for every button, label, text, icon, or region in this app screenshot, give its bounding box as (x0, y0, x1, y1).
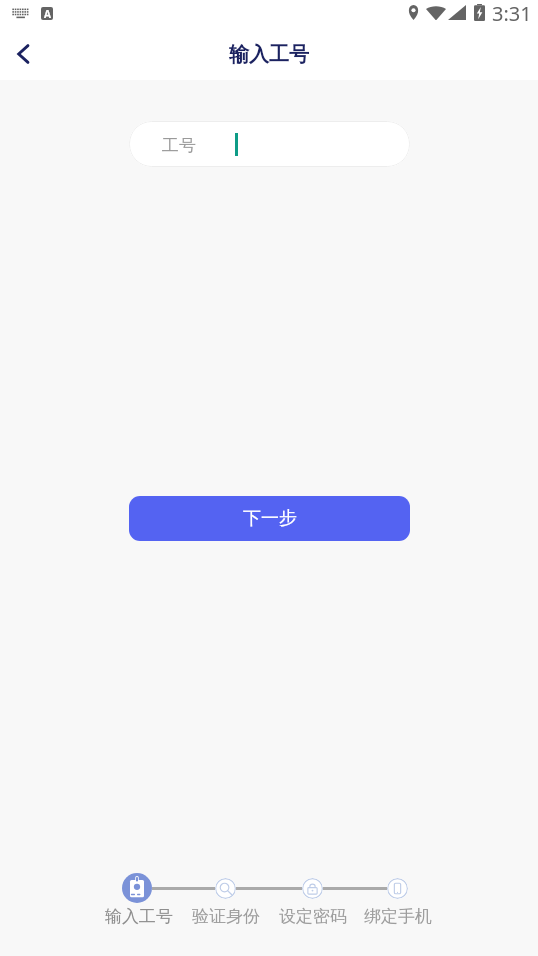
button[interactable]: 下一步 (129, 496, 410, 541)
button[interactable]: Step 2 (215, 878, 236, 899)
button[interactable]: 绑定手机 (358, 906, 438, 927)
staticText: 验证身份 (192, 906, 260, 927)
button[interactable]: Step 1 (122, 873, 152, 903)
button[interactable]: 验证身份 (186, 906, 266, 927)
button[interactable]: 输入工号 (99, 906, 179, 927)
staticText: 3:31 (492, 0, 532, 27)
button[interactable]: Back (0, 30, 48, 78)
button[interactable]: 工号 (129, 121, 410, 167)
staticText: 输入工号 (229, 42, 309, 67)
staticText: 输入工号 (105, 906, 173, 927)
staticText: A (44, 7, 51, 20)
staticText: 绑定手机 (364, 906, 432, 927)
staticText: 下一步 (243, 507, 297, 530)
staticText: 设定密码 (279, 906, 347, 927)
button[interactable]: 设定密码 (273, 906, 353, 927)
button[interactable]: Step 3 (302, 878, 323, 899)
button[interactable]: Step 4 (387, 878, 408, 899)
staticText: 工号 (162, 135, 196, 156)
